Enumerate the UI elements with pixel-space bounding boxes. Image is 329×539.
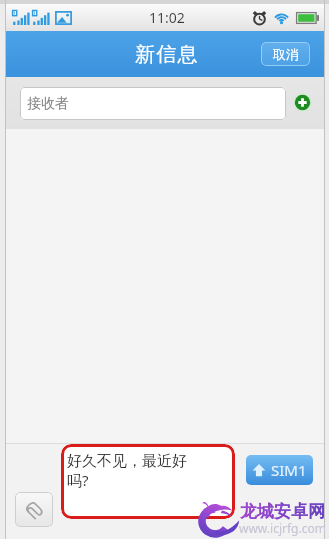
button[interactable]: 好久不见，最近好 吗?	[61, 444, 235, 519]
button[interactable]: Add recipient	[293, 93, 312, 112]
staticText: 龙城安卓网	[240, 501, 325, 522]
staticText: 11:02	[149, 8, 185, 27]
staticText: SIM1	[271, 460, 307, 480]
button[interactable]: 取消	[261, 42, 310, 66]
staticText: www.icjrfg.com	[239, 520, 326, 536]
button[interactable]: 接收者	[20, 87, 286, 120]
staticText: 新信息	[135, 42, 199, 67]
staticText: 接收者	[27, 95, 69, 113]
button[interactable]: SIM1	[246, 455, 313, 485]
button[interactable]: Attach	[15, 492, 53, 527]
staticText: 取消	[273, 46, 299, 62]
staticText: 好久不见，最近好 吗?	[67, 452, 187, 490]
